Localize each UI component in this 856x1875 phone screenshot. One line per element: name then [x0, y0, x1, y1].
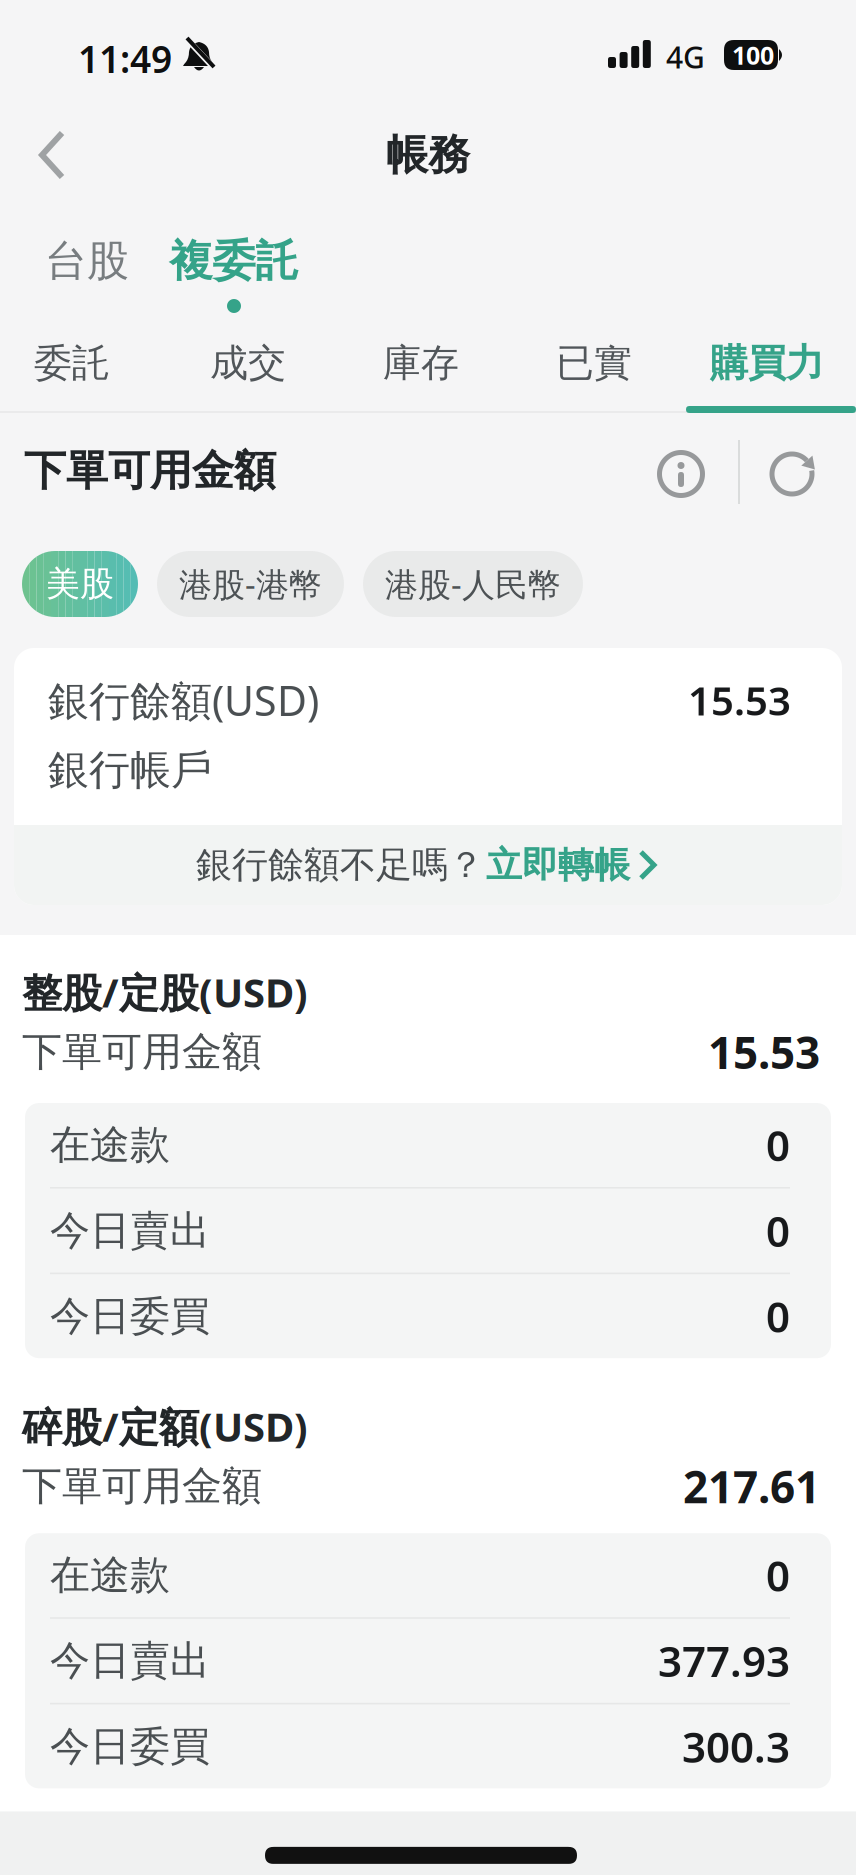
staticText: 100: [732, 38, 774, 72]
button[interactable]: 銀行餘額不足嗎？: [14, 825, 842, 905]
staticText: 成交: [210, 340, 286, 386]
staticText: 4G: [666, 37, 705, 77]
staticText: 碎股/定額(USD): [22, 1400, 308, 1453]
staticText: 377.93: [658, 1633, 790, 1689]
button[interactable]: Info: [649, 442, 713, 506]
staticText: 15.53: [708, 1023, 820, 1081]
staticText: 今日委買: [50, 1292, 210, 1341]
staticText: 0: [766, 1547, 790, 1603]
staticText: 美股: [46, 563, 114, 605]
staticText: 下單可用金額: [22, 1027, 262, 1076]
staticText: 217.61: [683, 1457, 820, 1515]
staticText: 300.3: [682, 1718, 790, 1774]
staticText: 15.53: [688, 673, 791, 726]
staticText: 在途款: [50, 1120, 170, 1169]
staticText: 下單可用金額: [24, 445, 276, 497]
staticText: 購買力: [710, 340, 824, 386]
staticText: 銀行帳戶: [48, 745, 212, 795]
staticText: 11:49: [78, 34, 172, 83]
staticText: 今日委買: [50, 1722, 210, 1771]
staticText: 複委託: [169, 235, 298, 287]
button[interactable]: 已實: [509, 313, 679, 413]
staticText: 0: [766, 1203, 790, 1258]
staticText: 下單可用金額: [22, 1462, 262, 1511]
staticText: 整股/定股(USD): [22, 965, 308, 1018]
staticText: 港股-人民幣: [385, 562, 561, 606]
button[interactable]: 複委託: [149, 229, 319, 293]
staticText: 台股: [45, 235, 129, 287]
button[interactable]: 委託: [0, 313, 157, 413]
staticText: 庫存: [383, 340, 459, 386]
button[interactable]: 庫存: [336, 313, 506, 413]
staticText: 在途款: [50, 1551, 170, 1600]
button[interactable]: Back: [26, 119, 98, 191]
button[interactable]: 美股: [22, 551, 138, 617]
button[interactable]: 港股-港幣: [157, 551, 344, 617]
button[interactable]: 港股-人民幣: [363, 551, 583, 617]
staticText: 港股-港幣: [179, 562, 322, 606]
button[interactable]: Refresh: [761, 443, 823, 505]
button[interactable]: 成交: [163, 313, 333, 413]
staticText: 0: [766, 1117, 790, 1173]
staticText: 帳務: [386, 129, 470, 181]
button[interactable]: 購買力: [682, 313, 852, 413]
staticText: 委託: [34, 340, 110, 386]
staticText: 立即轉帳: [486, 843, 630, 887]
staticText: 銀行餘額(USD): [48, 673, 319, 727]
staticText: 今日賣出: [50, 1206, 210, 1255]
staticText: 已實: [556, 340, 632, 386]
button[interactable]: 台股: [27, 229, 147, 293]
staticText: 0: [766, 1288, 790, 1344]
staticText: 今日賣出: [50, 1636, 210, 1685]
staticText: 銀行餘額不足嗎？: [196, 843, 484, 887]
